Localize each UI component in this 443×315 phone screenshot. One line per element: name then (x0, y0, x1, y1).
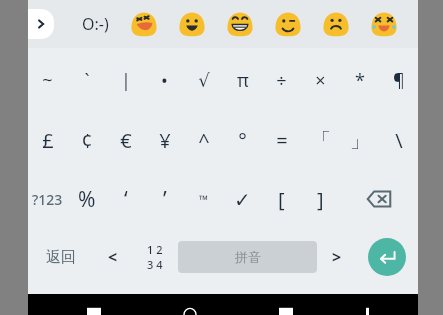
button[interactable]: Back (64, 294, 124, 315)
button[interactable]: Keyboard (352, 294, 382, 315)
button[interactable]: ✓ (223, 170, 262, 228)
staticText: 3 4 (147, 257, 163, 272)
button[interactable]: 1 2 (132, 228, 178, 286)
button[interactable]: 「 (301, 110, 340, 170)
staticText: * (355, 68, 365, 93)
button[interactable]: Emoji 4 (316, 4, 356, 44)
button[interactable]: • (145, 50, 184, 110)
button[interactable]: Emoji 3 (268, 4, 308, 44)
button[interactable]: % (67, 170, 106, 228)
staticText: [ (278, 186, 285, 213)
button[interactable]: Emoji 0 (124, 4, 164, 44)
staticText: ~ (42, 68, 53, 93)
staticText: ™ (199, 191, 209, 207)
button[interactable]: € (106, 110, 145, 170)
button[interactable]: Recents (256, 294, 316, 315)
staticText: £ (42, 127, 54, 154)
staticText: 返回 (46, 248, 76, 267)
staticText: > (332, 246, 342, 268)
staticText: • (161, 68, 168, 93)
staticText: ?123 (32, 190, 63, 209)
button[interactable]: 拼音 (178, 241, 317, 273)
staticText: % (78, 185, 96, 214)
staticText: 拼音 (235, 249, 261, 265)
button[interactable]: 」 (340, 110, 379, 170)
staticText: ÷ (276, 68, 287, 93)
button[interactable]: 返回 (28, 228, 93, 286)
staticText: × (315, 68, 326, 93)
staticText: ] (317, 186, 324, 213)
button[interactable]: Next (317, 228, 356, 286)
button[interactable]: ™ (184, 170, 223, 228)
button[interactable]: ] (301, 170, 340, 228)
staticText: < (108, 246, 118, 268)
staticText: ° (238, 127, 247, 154)
staticText: ^ (198, 127, 210, 154)
button[interactable]: Enter (368, 238, 406, 276)
staticText: ` (84, 68, 90, 93)
button[interactable]: ?123 (28, 170, 67, 228)
button[interactable]: ¶ (379, 50, 418, 110)
staticText: ‘ (124, 185, 128, 214)
button[interactable]: ^ (184, 110, 223, 170)
button[interactable]: ‘ (106, 170, 145, 228)
staticText: 1 2 (147, 242, 163, 257)
button[interactable]: ¢ (67, 110, 106, 170)
button[interactable]: ~ (28, 50, 67, 110)
button[interactable]: | (106, 50, 145, 110)
staticText: √ (198, 70, 210, 91)
staticText: ¥ (159, 127, 171, 154)
button[interactable]: × (301, 50, 340, 110)
button[interactable]: £ (28, 110, 67, 170)
button[interactable]: O:-) (72, 4, 118, 44)
button[interactable]: Backspace (340, 170, 418, 228)
button[interactable]: ¥ (145, 110, 184, 170)
button[interactable]: ÷ (262, 50, 301, 110)
button[interactable]: Emoji 5 (364, 4, 404, 44)
button[interactable]: ° (223, 110, 262, 170)
staticText: 」 (350, 128, 370, 153)
button[interactable]: ` (67, 50, 106, 110)
staticText: \ (395, 127, 403, 154)
button[interactable]: π (223, 50, 262, 110)
button[interactable]: Emoji 2 (220, 4, 260, 44)
staticText: ¢ (81, 127, 93, 154)
staticText: ’ (163, 185, 167, 214)
staticText: | (121, 68, 131, 93)
button[interactable]: * (340, 50, 379, 110)
staticText: = (276, 127, 288, 154)
button[interactable]: Previous (93, 228, 132, 286)
button[interactable]: √ (184, 50, 223, 110)
staticText: O:-) (82, 13, 109, 35)
button[interactable]: ’ (145, 170, 184, 228)
button[interactable]: Expand suggestions (28, 9, 54, 39)
button[interactable]: = (262, 110, 301, 170)
staticText: ¶ (393, 68, 405, 93)
button[interactable]: Emoji 1 (172, 4, 212, 44)
staticText: ✓ (234, 188, 251, 211)
button[interactable]: Home (160, 294, 220, 315)
staticText: € (120, 127, 132, 154)
staticText: 「 (311, 128, 331, 153)
button[interactable]: [ (262, 170, 301, 228)
staticText: π (237, 68, 249, 93)
button[interactable]: \ (379, 110, 418, 170)
